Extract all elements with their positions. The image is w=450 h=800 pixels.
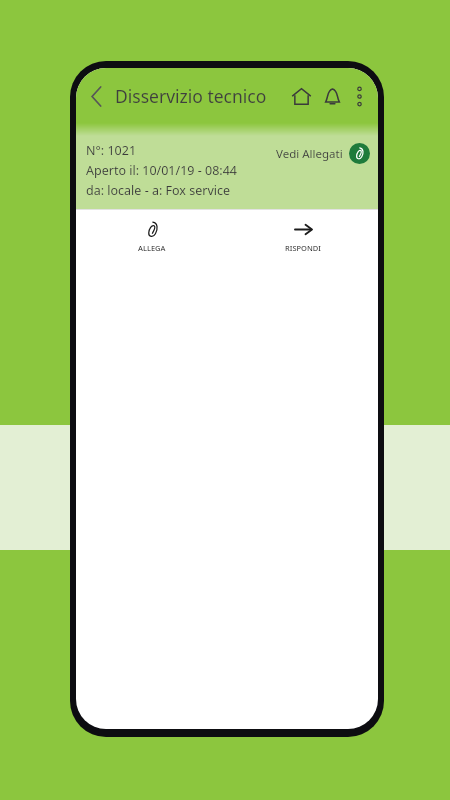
staticText: da: locale - a: Fox service [86,182,231,199]
staticText: Aperto il: 10/01/19 - 08:44 [86,162,237,179]
staticText: RISPONDI [285,243,321,253]
button[interactable]: Back [84,76,108,116]
staticText: Disservizio tecnico [115,84,267,108]
staticText: ALLEGA [138,243,166,253]
button[interactable]: Vedi Allegati [276,143,370,164]
button[interactable]: Home [286,81,316,111]
staticText: N°: 1021 [86,142,137,159]
button[interactable]: More options [350,79,368,113]
button[interactable]: RISPONDI [227,210,378,268]
button[interactable]: Notifications [318,82,346,110]
staticText: Vedi Allegati [276,146,343,162]
button[interactable]: ALLEGA [76,210,227,268]
